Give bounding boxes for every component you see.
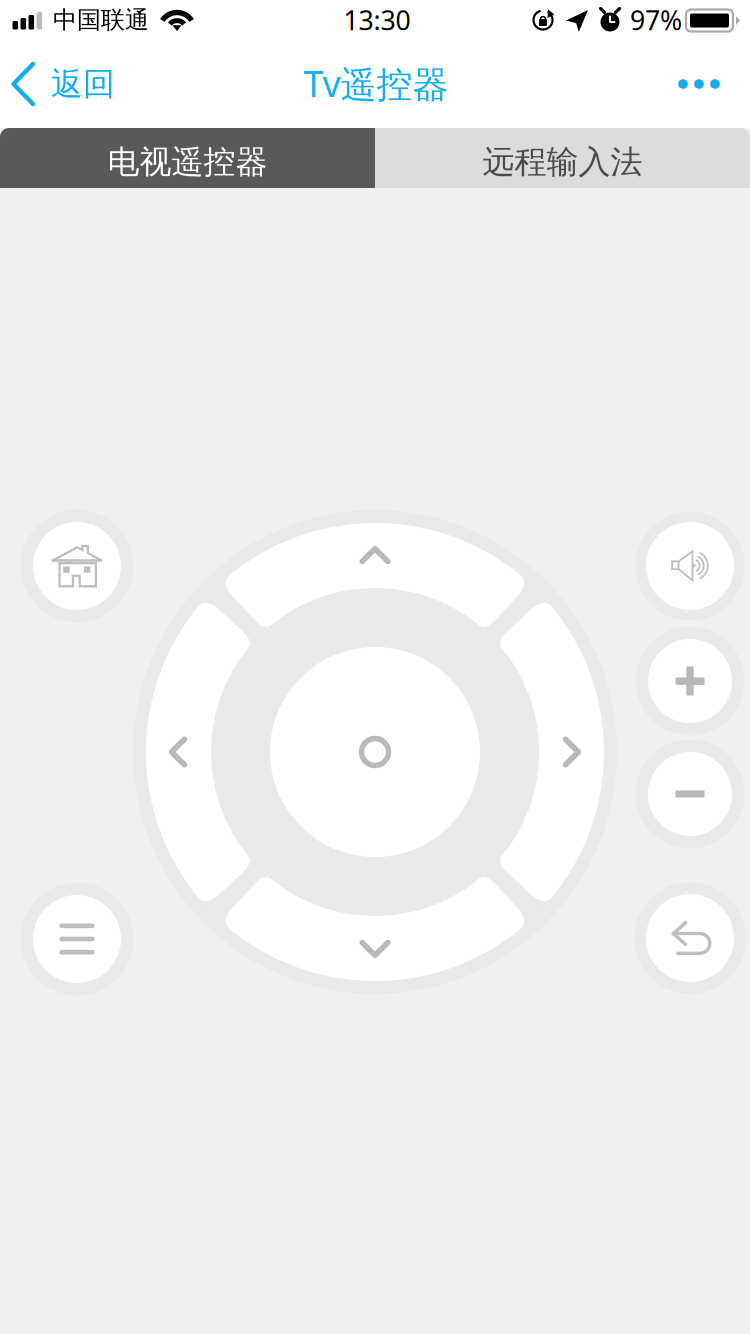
button[interactable]: 远程输入法 — [375, 128, 750, 196]
staticText: 13:30 — [343, 2, 410, 38]
staticText: 远程输入法 — [482, 142, 642, 182]
button[interactable]: 电视遥控器 — [0, 128, 375, 196]
button[interactable]: Up — [0, 0, 750, 1334]
staticText: 返回 — [51, 64, 115, 104]
button[interactable]: More options — [668, 54, 730, 114]
button[interactable]: Right — [0, 0, 750, 1334]
button[interactable]: Left — [0, 0, 750, 1334]
button[interactable]: Down — [0, 0, 750, 1334]
button[interactable]: 返回 — [0, 40, 130, 128]
button[interactable]: Back — [634, 882, 746, 994]
staticText: 中国联通 — [53, 5, 149, 35]
button[interactable]: Volume up — [635, 626, 744, 735]
button[interactable]: Mute — [635, 511, 744, 620]
button[interactable]: OK — [270, 647, 480, 857]
staticText: 97% — [630, 2, 682, 38]
button[interactable]: Home — [20, 509, 133, 622]
staticText: 电视遥控器 — [107, 142, 267, 182]
staticText: Tv遥控器 — [303, 58, 448, 108]
button[interactable]: Volume down — [635, 739, 744, 848]
button[interactable]: Menu — [20, 882, 133, 995]
